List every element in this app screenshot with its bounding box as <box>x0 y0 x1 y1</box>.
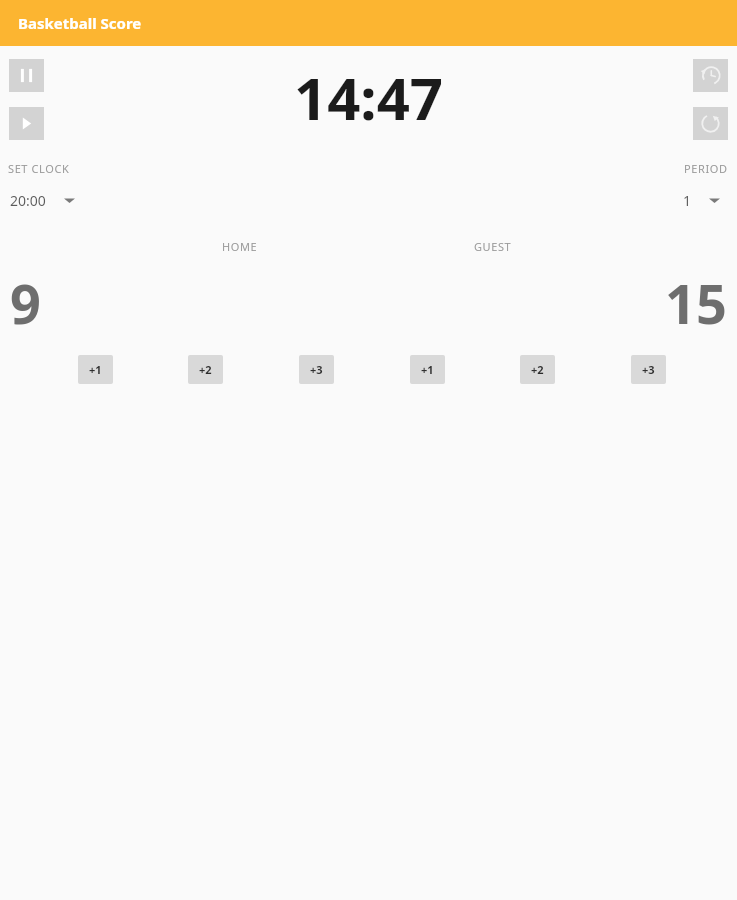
staticText: +1 <box>421 362 434 377</box>
staticText: HOME <box>222 239 258 254</box>
staticText: 9 <box>10 266 41 340</box>
button[interactable]: 20:00 <box>4 185 82 215</box>
staticText: +3 <box>310 362 323 377</box>
button[interactable]: +2 <box>188 355 223 384</box>
staticText: +1 <box>89 362 102 377</box>
button[interactable]: +1 <box>78 355 113 384</box>
button[interactable]: +3 <box>631 355 666 384</box>
staticText: SET CLOCK <box>8 161 70 176</box>
button[interactable]: Play <box>9 107 44 140</box>
staticText: GUEST <box>474 239 512 254</box>
staticText: +2 <box>531 362 544 377</box>
staticText: +3 <box>642 362 655 377</box>
button[interactable]: Pause <box>9 59 44 92</box>
staticText: Basketball Score <box>18 13 142 33</box>
staticText: +2 <box>199 362 212 377</box>
button[interactable]: +3 <box>299 355 334 384</box>
staticText: 15 <box>665 266 727 340</box>
staticText: 14:47 <box>294 58 444 137</box>
button[interactable]: +1 <box>410 355 445 384</box>
button[interactable]: History <box>693 59 728 92</box>
staticText: 1 <box>683 191 692 210</box>
button[interactable]: 1 <box>672 185 732 215</box>
staticText: PERIOD <box>684 161 728 176</box>
button[interactable]: Reset <box>693 107 728 140</box>
button[interactable]: +2 <box>520 355 555 384</box>
staticText: 20:00 <box>10 191 46 210</box>
